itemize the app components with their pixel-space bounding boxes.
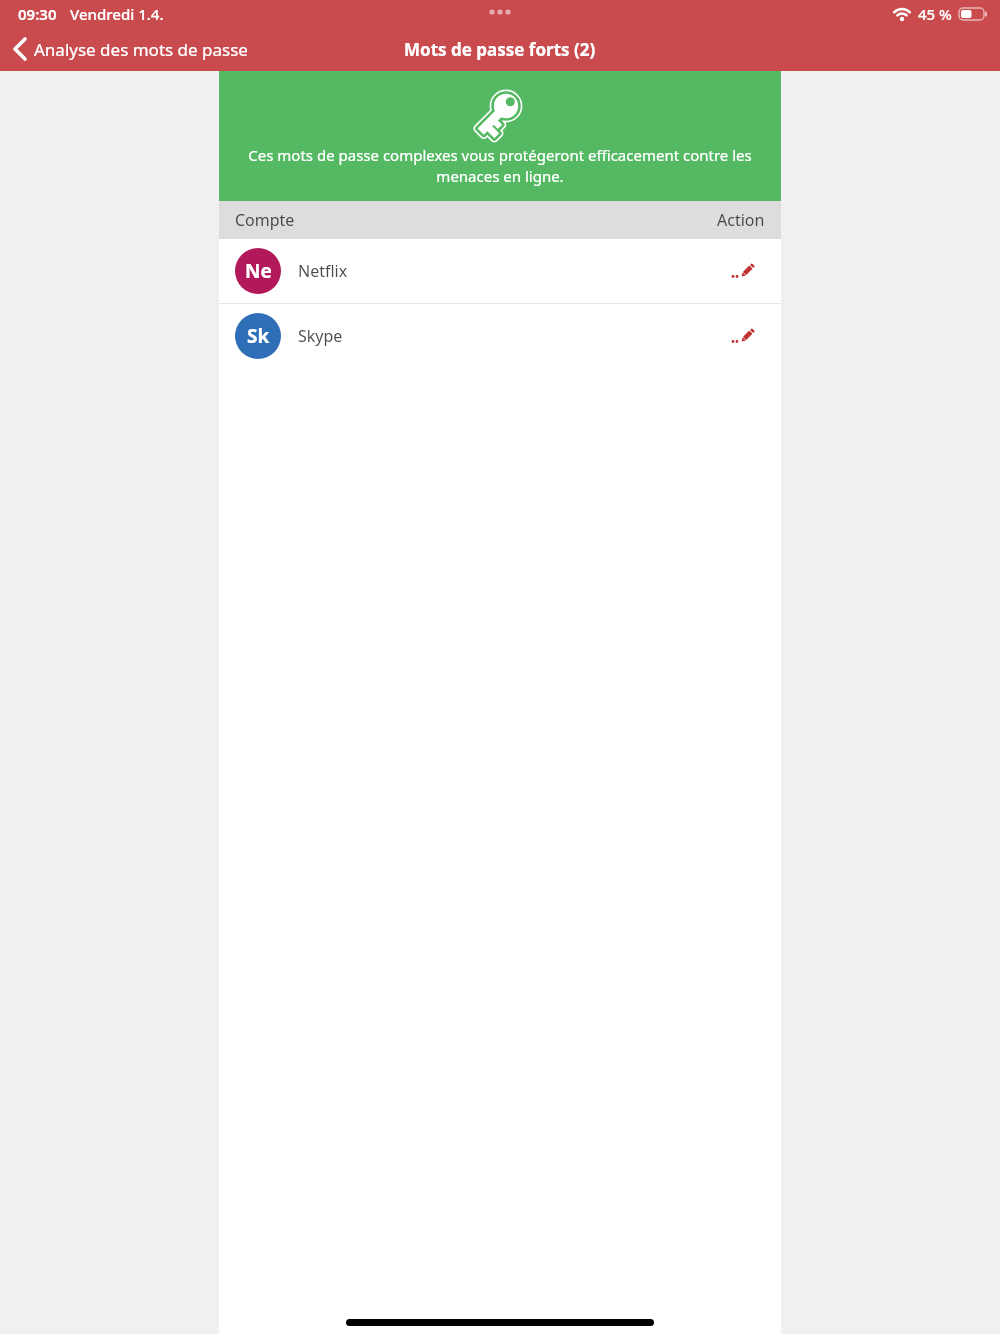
staticText: 45 % <box>918 4 952 24</box>
staticText: Skype <box>298 325 343 347</box>
staticText: Netflix <box>298 260 348 282</box>
staticText: Vendredi 1.4. <box>70 4 164 24</box>
staticText: 09:30 <box>18 4 57 24</box>
staticText: Ne <box>245 258 272 284</box>
button[interactable]: Ne <box>219 239 781 303</box>
staticText: Compte <box>235 209 295 231</box>
button[interactable] <box>731 327 755 345</box>
staticText: Sk <box>247 323 270 349</box>
staticText: Action <box>717 209 765 231</box>
staticText: Mots de passe forts (2) <box>404 38 596 61</box>
button[interactable]: Analyse des mots de passe <box>12 37 248 61</box>
button[interactable] <box>731 262 755 280</box>
staticText: Ces mots de passe complexes vous protége… <box>248 145 752 187</box>
staticText: Analyse des mots de passe <box>34 38 248 61</box>
button[interactable]: Sk <box>219 304 781 368</box>
